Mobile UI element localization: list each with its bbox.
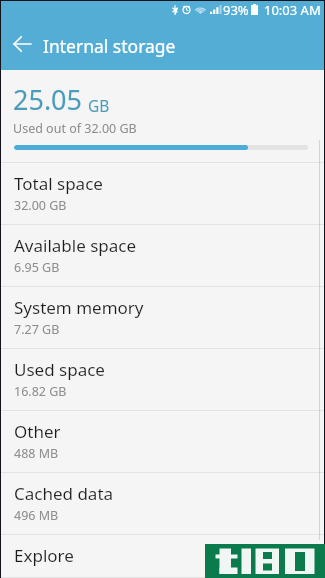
staticText: Other xyxy=(14,420,61,443)
button[interactable]: Total space xyxy=(1,163,324,225)
staticText: 32.00 GB xyxy=(14,197,67,214)
staticText xyxy=(14,569,18,578)
staticText: 7.27 GB xyxy=(14,321,60,338)
staticText: 25.05 xyxy=(13,81,83,118)
staticText: Explore xyxy=(14,544,74,567)
staticText: Total space xyxy=(14,172,103,195)
button[interactable]: Other xyxy=(1,411,324,473)
staticText: 6.95 GB xyxy=(14,259,60,276)
staticText: GB xyxy=(88,95,110,116)
button[interactable]: Cached data xyxy=(1,473,324,535)
staticText: 16.82 GB xyxy=(14,383,67,400)
staticText: Internal storage xyxy=(43,34,176,58)
staticText: 496 MB xyxy=(14,507,59,524)
staticText: Used space xyxy=(14,358,105,381)
staticText: Available space xyxy=(14,234,137,257)
staticText: System memory xyxy=(14,296,144,319)
staticText: 488 MB xyxy=(14,445,59,462)
button[interactable]: Explore xyxy=(1,535,324,578)
button[interactable]: Used space xyxy=(1,349,324,411)
staticText: Cached data xyxy=(14,482,114,505)
staticText: 93% xyxy=(223,1,249,18)
staticText: 10:03 AM xyxy=(264,1,321,18)
button[interactable]: System memory xyxy=(1,287,324,349)
button[interactable]: Available space xyxy=(1,225,324,287)
button[interactable]: Back xyxy=(1,22,43,66)
staticText: Used out of 32.00 GB xyxy=(13,120,137,137)
